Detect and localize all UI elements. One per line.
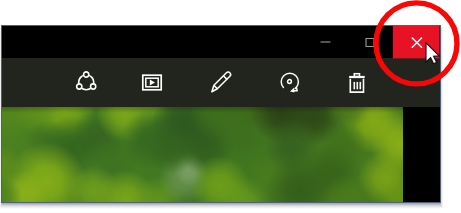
- button[interactable]: Edit: [197, 59, 245, 106]
- button[interactable]: Share: [63, 59, 111, 106]
- button[interactable]: Rotate: [267, 59, 315, 106]
- button[interactable]: Maximize: [348, 26, 394, 58]
- button[interactable]: Delete: [331, 59, 379, 106]
- button[interactable]: Slideshow: [127, 59, 175, 106]
- button[interactable]: Close: [394, 26, 440, 58]
- button[interactable]: Minimize: [302, 26, 348, 58]
